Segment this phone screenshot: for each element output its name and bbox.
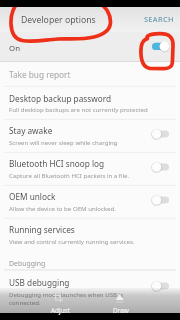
- button[interactable]: Adjust: [44, 291, 76, 315]
- staticText: Stay awake: [9, 125, 53, 136]
- staticText: Debugging mode launches when USB is: [9, 290, 124, 298]
- staticText: Full desktop backups are not currently p…: [9, 105, 148, 113]
- button[interactable]: [0, 186, 180, 218]
- staticText: Desktop backup password: [9, 93, 112, 104]
- staticText: SEARCH: [144, 14, 174, 24]
- button[interactable]: SEARCH: [141, 10, 177, 28]
- staticText: Adjust: [51, 306, 70, 315]
- staticText: Capture all Bluetooth HCI packets in a f…: [9, 171, 130, 179]
- staticText: Allow the device to be OEM unlocked.: [9, 204, 116, 212]
- staticText: On: [9, 43, 21, 54]
- button[interactable]: [0, 153, 180, 185]
- staticText: Developer options: [21, 14, 96, 26]
- staticText: Running services: [9, 224, 75, 235]
- button[interactable]: Draw: [105, 291, 135, 315]
- staticText: connected.: [9, 298, 41, 306]
- staticText: Bluetooth HCI snoop log: [9, 158, 105, 169]
- staticText: Screen will never sleep while charging: [9, 138, 118, 146]
- staticText: Draw: [113, 306, 129, 315]
- button[interactable]: [0, 272, 180, 302]
- button[interactable]: [0, 63, 180, 86]
- button[interactable]: [0, 32, 180, 61]
- staticText: View and control currently running servi…: [9, 237, 135, 245]
- button[interactable]: [0, 220, 180, 250]
- staticText: Debugging: [9, 259, 46, 268]
- staticText: USB debugging: [9, 277, 70, 288]
- button[interactable]: [0, 120, 180, 152]
- staticText: OEM unlock: [9, 191, 56, 202]
- staticText: Take bug report: [9, 69, 71, 80]
- button[interactable]: [0, 88, 180, 118]
